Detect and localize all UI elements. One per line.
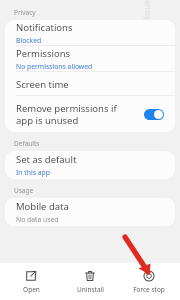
staticText: themepage.com <box>142 0 153 54</box>
button[interactable]: Remove permissions if app is unused <box>5 96 175 132</box>
staticText: Mobile data <box>16 200 164 213</box>
staticText: Set as default <box>16 153 164 166</box>
staticText: Defaults <box>14 139 40 148</box>
staticText: Open <box>23 285 40 294</box>
button[interactable]: Notifications <box>5 20 175 46</box>
staticText: Notifications <box>16 21 164 34</box>
button[interactable]: Mobile data <box>5 198 175 226</box>
staticText: Permissions <box>16 47 164 60</box>
button[interactable]: Uninstall <box>62 263 118 300</box>
button[interactable]: Force stop <box>121 263 177 300</box>
button[interactable]: Screen time <box>5 72 175 96</box>
staticText: In this app <box>16 168 50 177</box>
staticText: Force stop <box>133 285 165 294</box>
staticText: Usage <box>14 186 34 195</box>
staticText: Screen time <box>16 78 164 91</box>
button[interactable]: Open <box>3 263 59 300</box>
staticText: No permissions allowed <box>16 62 93 71</box>
staticText: No data used <box>16 215 59 224</box>
staticText: Privacy <box>14 8 36 17</box>
staticText: Uninstall <box>77 285 104 294</box>
staticText: Blocked <box>16 36 42 45</box>
button[interactable]: Toggle remove permissions <box>144 109 164 120</box>
staticText: Remove permissions if app is unused <box>16 102 134 127</box>
button[interactable]: Permissions <box>5 46 175 72</box>
button[interactable]: Set as default <box>5 151 175 179</box>
